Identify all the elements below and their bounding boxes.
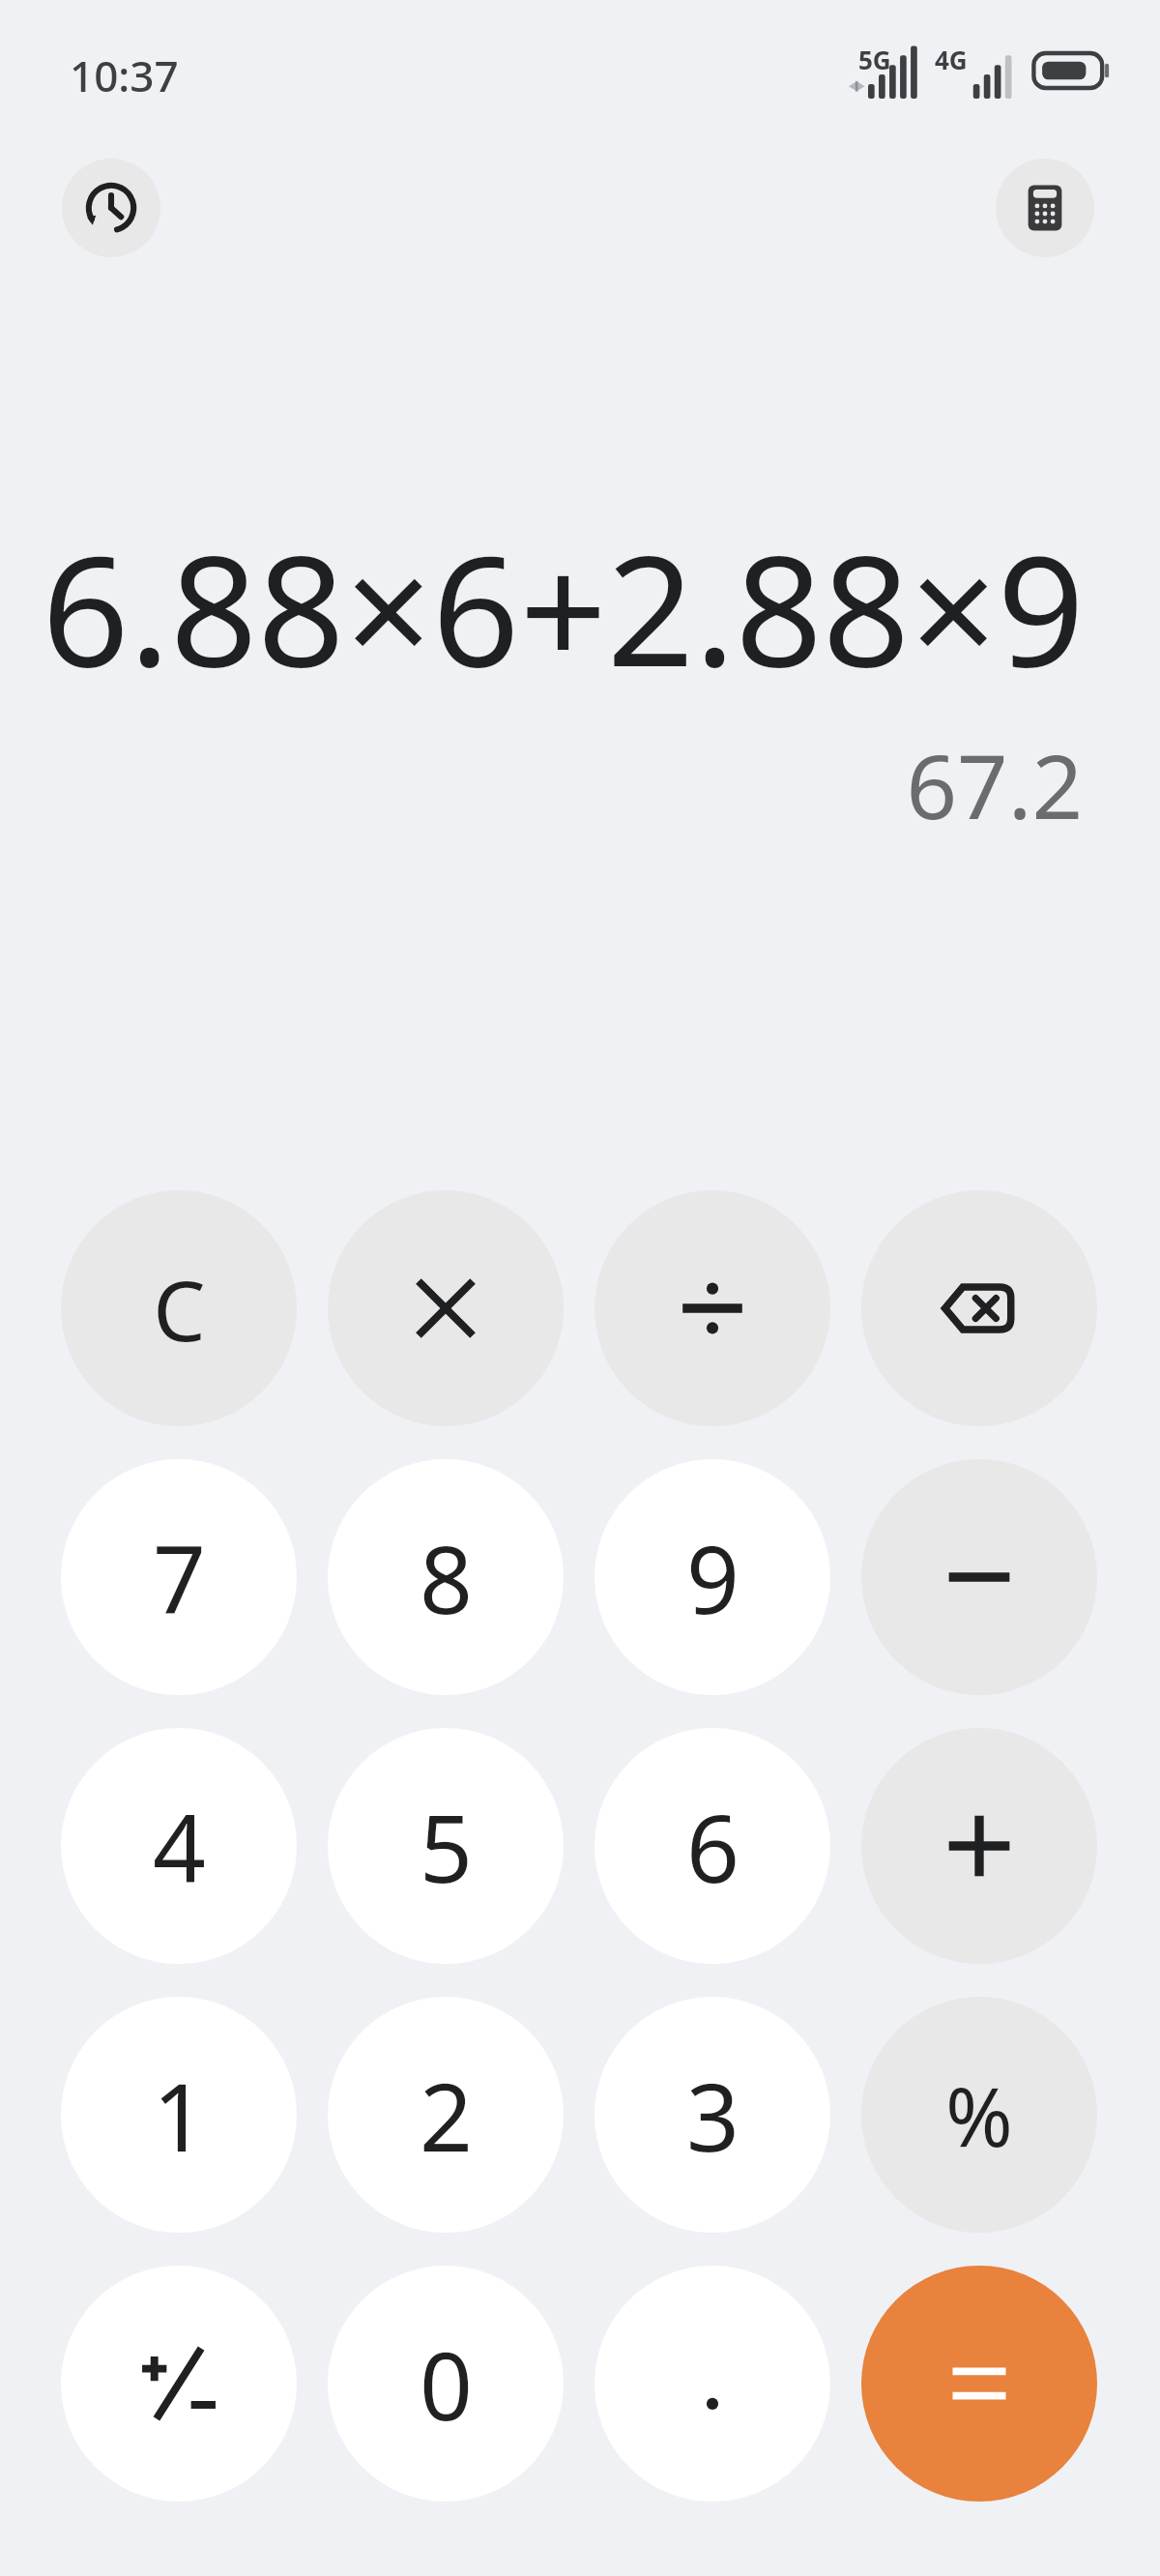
staticText: 6.88×6+2.88×9 (0, 503, 1085, 711)
button[interactable]: 2 (328, 1997, 564, 2233)
button[interactable]: 4 (61, 1728, 297, 1964)
staticText: 4 (153, 1783, 206, 1910)
button[interactable]: Divide (594, 1190, 830, 1426)
button[interactable]: 8 (328, 1459, 564, 1695)
staticText: 9 (686, 1514, 739, 1641)
button[interactable]: C (61, 1190, 297, 1426)
staticText: 67.2 (0, 724, 1083, 845)
staticText: % (945, 2060, 1013, 2170)
button[interactable]: Toggle sign (61, 2266, 297, 2502)
staticText: 5 (420, 1783, 473, 1910)
staticText: 7 (153, 1514, 206, 1641)
staticText: 6 (686, 1783, 739, 1910)
button[interactable]: Equals (861, 2266, 1097, 2502)
button[interactable]: 7 (61, 1459, 297, 1695)
button[interactable]: Decimal point (594, 2266, 830, 2502)
button[interactable]: % (861, 1997, 1097, 2233)
button[interactable]: 0 (328, 2266, 564, 2502)
staticText: 1 (153, 2052, 206, 2179)
staticText: 8 (420, 1514, 473, 1641)
button[interactable]: 9 (594, 1459, 830, 1695)
button[interactable]: Multiply (328, 1190, 564, 1426)
button[interactable]: 6 (594, 1728, 830, 1964)
button[interactable]: Minus (861, 1459, 1097, 1695)
staticText: 0 (420, 2321, 473, 2447)
button[interactable]: 1 (61, 1997, 297, 2233)
button[interactable]: 5 (328, 1728, 564, 1964)
staticText: 2 (420, 2052, 473, 2179)
button[interactable]: Backspace (861, 1190, 1097, 1426)
staticText: 4G (935, 43, 968, 76)
button[interactable]: History (62, 159, 160, 257)
button[interactable]: Calculator mode (996, 159, 1094, 257)
button[interactable]: Plus (861, 1728, 1097, 1964)
staticText: 3 (686, 2052, 739, 2179)
staticText: 5G (858, 43, 891, 76)
staticText: C (153, 1252, 206, 1365)
button[interactable]: 3 (594, 1997, 830, 2233)
staticText: 10:37 (70, 46, 179, 104)
